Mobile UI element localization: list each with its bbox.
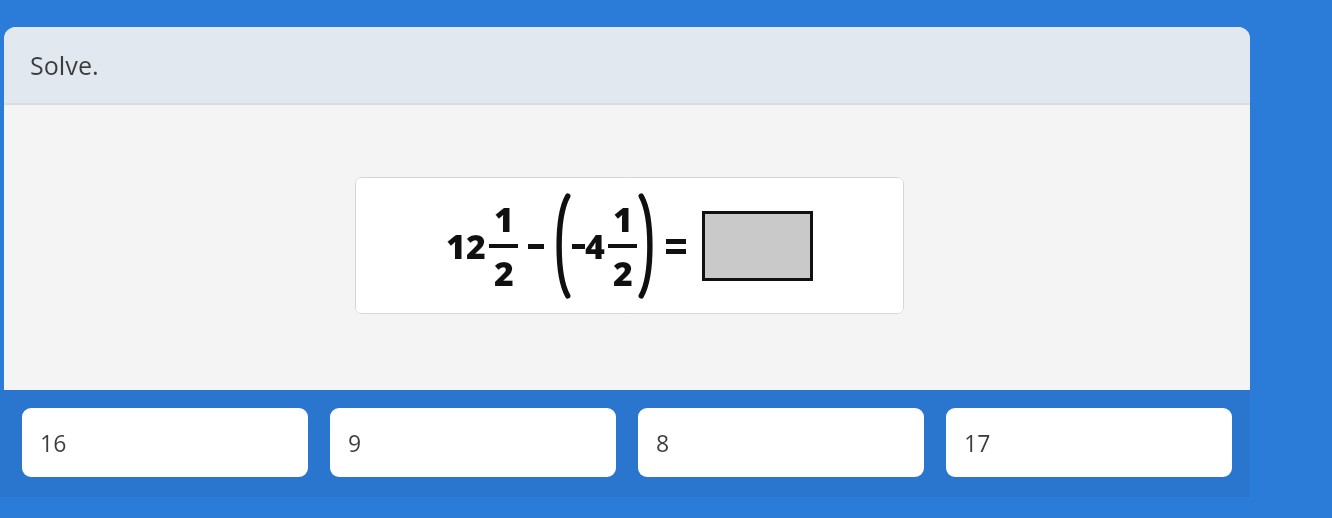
staticText: 1 (613, 196, 633, 242)
staticText: 12 (446, 223, 486, 269)
staticText: 16 (40, 427, 67, 458)
other: Answer blank (702, 211, 813, 281)
button[interactable]: 16 (22, 408, 308, 477)
staticText: 17 (964, 427, 991, 458)
button[interactable]: 17 (946, 408, 1232, 477)
staticText: 4 (585, 223, 605, 269)
staticText: 2 (613, 250, 633, 296)
staticText: 9 (348, 427, 362, 458)
staticText: 2 (494, 250, 514, 296)
staticText: Solve. (30, 48, 99, 82)
staticText: 8 (656, 427, 670, 458)
staticText: 1 (494, 196, 514, 242)
button[interactable]: 9 (330, 408, 616, 477)
button[interactable]: 8 (638, 408, 924, 477)
